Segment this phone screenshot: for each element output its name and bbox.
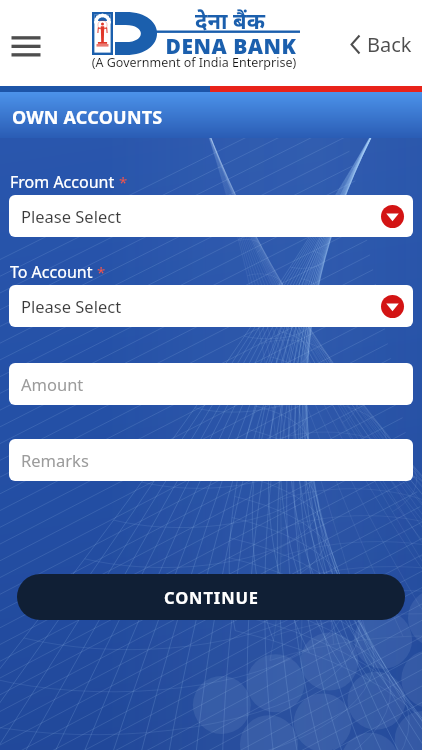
staticText: To Account: [10, 261, 93, 283]
button[interactable]: Amount: [9, 363, 413, 405]
staticText: (A Government of India Enterprise): [87, 54, 301, 71]
staticText: *: [119, 172, 128, 192]
button[interactable]: CONTINUE: [17, 574, 405, 620]
button[interactable]: Please Select: [9, 195, 413, 237]
button[interactable]: Remarks: [9, 439, 413, 481]
button[interactable]: Back: [346, 25, 416, 64]
staticText: DENA BANK: [160, 32, 302, 61]
staticText: From Account: [10, 171, 115, 193]
staticText: Remarks: [21, 449, 89, 471]
staticText: CONTINUE: [164, 586, 259, 608]
staticText: *: [97, 262, 106, 282]
button[interactable]: Please Select: [9, 285, 413, 327]
staticText: Amount: [21, 373, 84, 395]
staticText: Back: [367, 31, 412, 58]
staticText: Please Select: [21, 295, 122, 317]
button[interactable]: Menu: [3, 23, 49, 69]
staticText: Please Select: [21, 205, 122, 227]
staticText: OWN ACCOUNTS: [12, 105, 163, 130]
staticText: देना बैंक: [160, 5, 300, 35]
